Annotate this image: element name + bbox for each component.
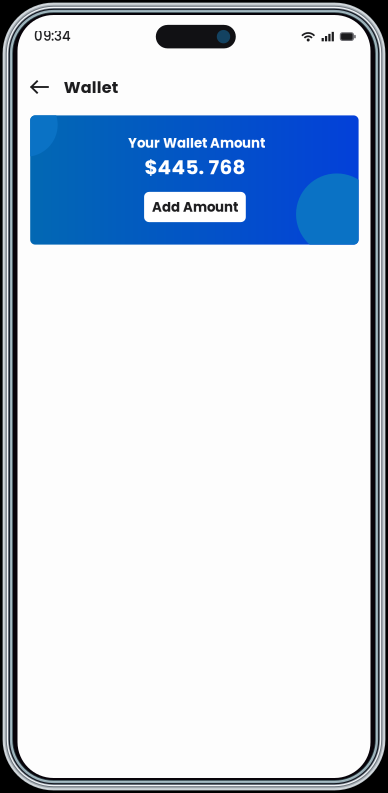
staticText: Wallet <box>64 76 118 98</box>
staticText: Your Wallet Amount <box>128 134 265 153</box>
button[interactable]: Back <box>25 72 68 104</box>
button[interactable]: Add Amount <box>144 192 246 222</box>
staticText: 09:34 <box>34 27 71 45</box>
staticText: $445. 768 <box>144 153 245 181</box>
staticText: Add Amount <box>152 198 238 216</box>
